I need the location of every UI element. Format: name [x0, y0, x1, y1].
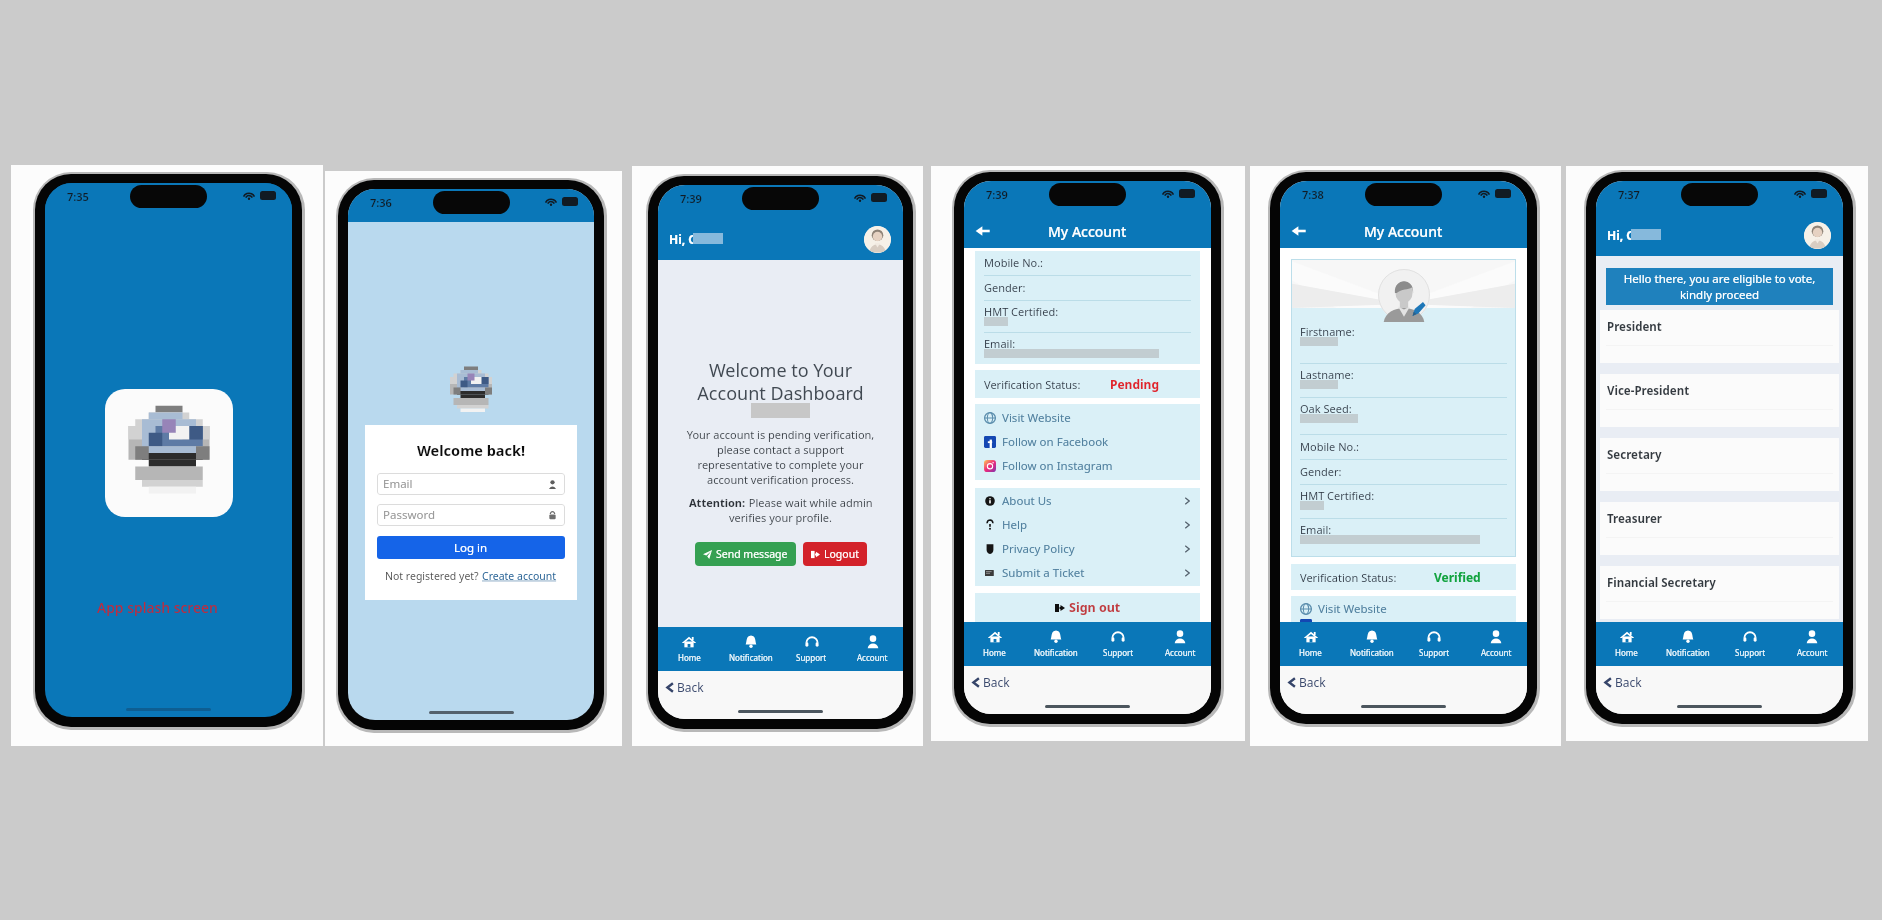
button[interactable]: Sign out — [975, 593, 1200, 622]
staticText: Visit Website — [1002, 410, 1071, 426]
button[interactable]: Financial Secretary — [1600, 566, 1839, 619]
staticText: Account — [1481, 647, 1512, 658]
staticText: Lastname: — [1300, 367, 1354, 382]
staticText: Log in — [454, 540, 488, 556]
staticText: Home — [678, 652, 701, 663]
button[interactable]: Account — [1465, 622, 1527, 666]
button[interactable]: Back — [665, 679, 704, 695]
button[interactable]: Back — [1603, 674, 1642, 690]
button[interactable]: Visit Website — [1291, 599, 1516, 619]
staticText: Support — [1735, 647, 1766, 658]
button[interactable]: Home — [658, 627, 720, 671]
staticText: 7:37 — [1618, 187, 1640, 202]
staticText: App splash screen — [97, 598, 218, 617]
staticText: Verification Status: — [1300, 570, 1397, 585]
button[interactable]: Home — [1596, 622, 1657, 666]
staticText: Notification — [729, 652, 773, 663]
button[interactable]: Logout — [803, 542, 867, 566]
staticText: President — [1607, 319, 1662, 335]
staticText: Verified — [1434, 569, 1481, 585]
button[interactable]: Send message — [695, 542, 796, 566]
staticText: Send message — [716, 547, 788, 561]
staticText: HMT Certified: — [984, 304, 1059, 319]
staticText: Privacy Policy — [1002, 541, 1075, 557]
staticText: Hi, C — [1607, 227, 1635, 243]
button[interactable]: Profile — [864, 226, 891, 253]
staticText: Attention: — [689, 495, 746, 510]
staticText: Help — [1002, 517, 1028, 533]
staticText: About Us — [1002, 493, 1052, 509]
button[interactable]: Back — [971, 674, 1010, 690]
staticText: Support — [1103, 647, 1134, 658]
button[interactable]: Account — [1149, 622, 1211, 666]
staticText: Notification — [1034, 647, 1078, 658]
button[interactable]: About Us — [975, 489, 1200, 513]
staticText: verifies your profile. — [729, 510, 832, 525]
button[interactable]: Notification — [720, 627, 781, 671]
button[interactable]: Support — [1403, 622, 1465, 666]
button[interactable]: Back — [973, 221, 993, 241]
staticText: Oak Seed: — [1300, 401, 1352, 416]
button[interactable]: Submit a Ticket — [975, 561, 1200, 585]
button[interactable]: Account — [842, 627, 903, 671]
staticText: Notification — [1350, 647, 1394, 658]
button[interactable]: Help — [975, 513, 1200, 537]
staticText: My Account — [1364, 222, 1443, 241]
staticText: Password — [383, 507, 436, 523]
staticText: Create account — [482, 569, 557, 583]
button[interactable]: Support — [1087, 622, 1149, 666]
staticText: Firstname: — [1300, 324, 1355, 339]
button[interactable]: Support — [781, 627, 842, 671]
button[interactable]: Email — [377, 473, 565, 495]
staticText: Welcome back! — [377, 440, 565, 460]
staticText: Submit a Ticket — [1002, 565, 1085, 581]
button[interactable]: Account — [1781, 622, 1843, 666]
staticText: Account — [1797, 647, 1828, 658]
button[interactable]: Back — [1289, 221, 1309, 241]
button[interactable]: Secretary — [1600, 438, 1839, 491]
button[interactable]: Notification — [1657, 622, 1719, 666]
staticText: My Account — [1048, 222, 1127, 241]
staticText: Secretary — [1607, 447, 1662, 463]
staticText: Mobile No.: — [1300, 439, 1360, 454]
staticText: Welcome to Your Account Dashboard — [668, 358, 893, 405]
staticText: Account — [1165, 647, 1196, 658]
button[interactable]: Follow on Instagram — [975, 454, 1200, 478]
staticText: Hi, C — [669, 231, 697, 247]
staticText: Home — [1299, 647, 1322, 658]
button[interactable]: Support — [1719, 622, 1781, 666]
button[interactable]: Follow on Facebook — [975, 430, 1200, 454]
button[interactable]: Vice-President — [1600, 374, 1839, 427]
button[interactable]: Home — [964, 622, 1025, 666]
staticText: 7:38 — [1302, 187, 1324, 202]
staticText: Treasurer — [1607, 511, 1662, 527]
staticText: Email: — [1300, 522, 1332, 537]
staticText: Not registered yet? — [385, 569, 482, 583]
button[interactable]: Log in — [377, 536, 565, 559]
staticText: Home — [983, 647, 1006, 658]
button[interactable]: Treasurer — [1600, 502, 1839, 555]
button[interactable]: President — [1600, 310, 1839, 363]
staticText: Your account is pending verification, pl… — [668, 427, 893, 487]
staticText: Support — [1419, 647, 1450, 658]
button[interactable]: Notification — [1341, 622, 1403, 666]
staticText: 7:36 — [370, 195, 392, 210]
button[interactable]: Privacy Policy — [975, 537, 1200, 561]
button[interactable]: Password — [377, 504, 565, 526]
staticText: Support — [796, 652, 827, 663]
button[interactable]: Visit Website — [975, 406, 1200, 430]
button[interactable]: Back — [1287, 674, 1326, 690]
button[interactable]: Home — [1280, 622, 1341, 666]
button[interactable]: Notification — [1025, 622, 1087, 666]
staticText: Follow on Instagram — [1002, 458, 1113, 474]
button[interactable]: Profile — [1804, 222, 1831, 249]
staticText: Back — [677, 679, 704, 695]
staticText: Home — [1615, 647, 1638, 658]
staticText: 7:35 — [67, 189, 89, 204]
staticText: Verification Status: — [984, 377, 1081, 392]
staticText: 7:39 — [986, 187, 1008, 202]
button[interactable]: Create account — [482, 569, 557, 583]
staticText: Email: — [984, 336, 1016, 351]
staticText: Back — [1615, 674, 1642, 690]
staticText: Gender: — [1300, 464, 1342, 479]
